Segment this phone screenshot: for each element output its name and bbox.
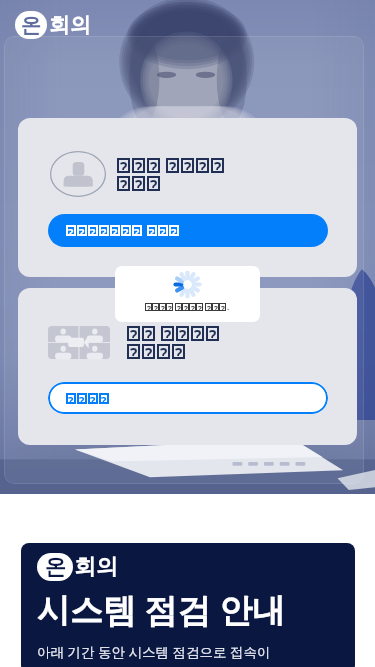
staticText: ?	[68, 225, 74, 236]
staticText: 온	[21, 13, 41, 38]
staticText: 회의	[74, 553, 118, 581]
button[interactable]: On Meeting home	[15, 0, 375, 50]
staticText: ?	[147, 303, 151, 311]
staticText: ?	[149, 225, 155, 236]
staticText: ?	[209, 326, 217, 341]
staticText: ?	[130, 344, 138, 359]
staticText: ?	[145, 344, 153, 359]
staticText: ?	[168, 303, 172, 311]
staticText: ?	[169, 158, 177, 173]
staticText: ?	[161, 303, 165, 311]
staticText: ?	[191, 303, 195, 311]
staticText: ?	[160, 225, 166, 236]
staticText: 시스템 점검 안내	[37, 587, 286, 632]
staticText: ?	[214, 158, 222, 173]
staticText: ?	[112, 225, 118, 236]
staticText: ?	[120, 176, 128, 191]
staticText: ?	[130, 326, 138, 341]
staticText: 회의	[49, 12, 91, 38]
staticText: ?	[101, 393, 107, 404]
staticText: ?	[164, 326, 172, 341]
staticText: ?	[198, 303, 202, 311]
staticText: ?	[150, 176, 158, 191]
staticText: ?	[221, 303, 225, 311]
staticText: ?	[90, 393, 96, 404]
staticText: ?	[120, 158, 128, 173]
staticText: .	[227, 302, 230, 312]
staticText: ?	[199, 158, 207, 173]
staticText: ?	[134, 225, 140, 236]
staticText: ?	[68, 393, 74, 404]
staticText: 아래 기간 동안 시스템 점검으로 접속이	[37, 643, 271, 661]
staticText: ?	[194, 326, 202, 341]
staticText: ?	[179, 326, 187, 341]
staticText: 온	[45, 554, 66, 580]
staticText: ?	[135, 158, 143, 173]
staticText: ?	[79, 225, 85, 236]
staticText: ?	[154, 303, 158, 311]
staticText: ?	[145, 326, 153, 341]
staticText: ?	[90, 225, 96, 236]
staticText: ?	[175, 344, 183, 359]
button[interactable]: ?	[48, 382, 328, 414]
button[interactable]: ?	[48, 214, 328, 247]
staticText: ?	[160, 344, 168, 359]
staticText: ?	[184, 303, 188, 311]
staticText: ?	[184, 158, 192, 173]
staticText: ?	[171, 225, 177, 236]
staticText: ?	[214, 303, 218, 311]
staticText: ?	[150, 158, 158, 173]
staticText: ?	[135, 176, 143, 191]
staticText: ?	[101, 225, 107, 236]
staticText: ?	[177, 303, 181, 311]
staticText: ?	[79, 393, 85, 404]
staticText: ?	[123, 225, 129, 236]
staticText: ?	[207, 303, 211, 311]
